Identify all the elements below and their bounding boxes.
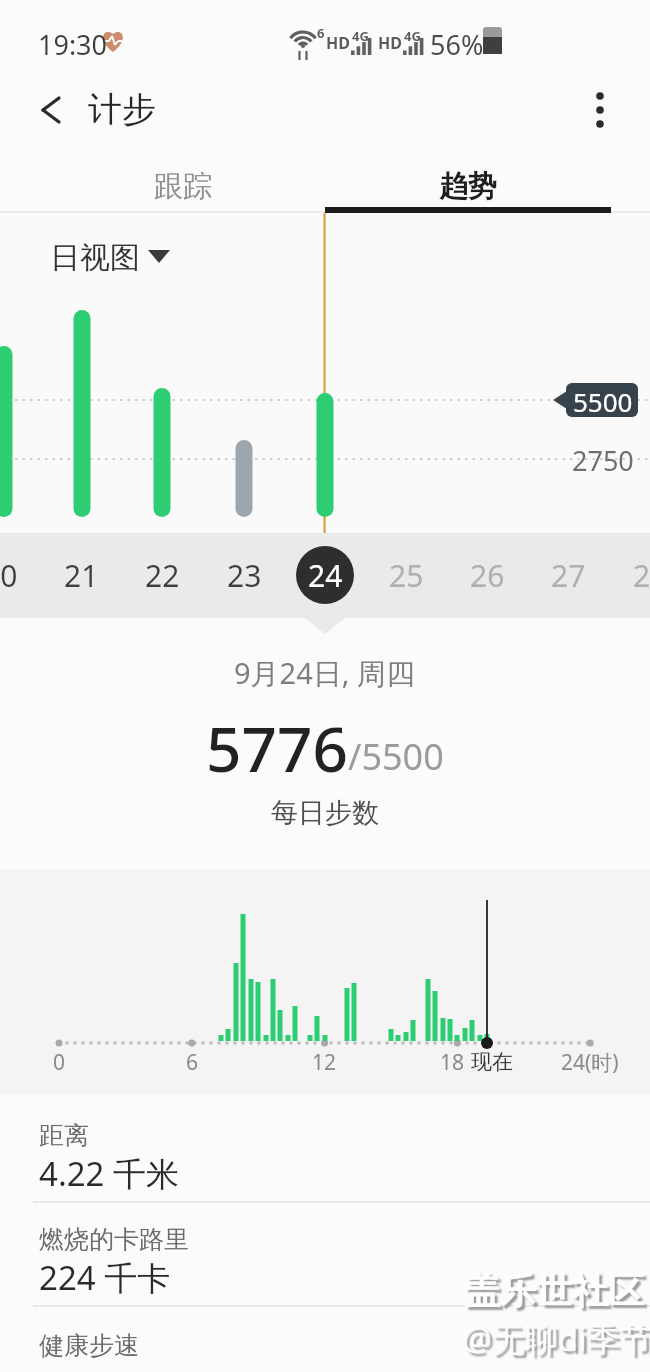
- staticText: 日视图: [50, 239, 140, 277]
- staticText: 0: [53, 1048, 66, 1077]
- staticText: 5776: [206, 706, 348, 786]
- staticText: 9月24日, 周四: [234, 653, 416, 693]
- button[interactable]: [578, 84, 622, 136]
- button[interactable]: 燃烧的卡路里: [0, 1212, 650, 1306]
- staticText: @无聊di季节: [462, 1316, 650, 1361]
- button[interactable]: 21: [41, 553, 121, 598]
- button[interactable]: 健康步速: [0, 1316, 650, 1372]
- staticText: 12: [312, 1048, 337, 1077]
- staticText: 2750: [572, 442, 634, 479]
- staticText: 4G: [404, 27, 421, 45]
- staticText: 盖乐世社区: [464, 1268, 644, 1313]
- staticText: 20: [0, 555, 18, 596]
- button[interactable]: 跟踪: [40, 160, 325, 212]
- staticText: 燃烧的卡路里: [39, 1224, 189, 1255]
- staticText: 健康步速: [39, 1330, 139, 1361]
- staticText: HD: [378, 32, 402, 54]
- button[interactable]: 26: [447, 553, 527, 598]
- staticText: 224 千卡: [39, 1255, 171, 1300]
- button[interactable]: 27: [528, 553, 608, 598]
- staticText: 24: [308, 555, 343, 596]
- button[interactable]: [26, 84, 78, 136]
- staticText: 25: [389, 555, 424, 596]
- button[interactable]: 23: [204, 553, 284, 598]
- staticText: 计步: [88, 88, 156, 131]
- staticText: 18: [440, 1048, 465, 1077]
- button[interactable]: 日视图: [40, 236, 180, 278]
- staticText: 26: [470, 555, 505, 596]
- staticText: 19:30: [38, 26, 108, 63]
- staticText: 6: [186, 1048, 199, 1077]
- staticText: 27: [551, 555, 586, 596]
- staticText: 56%: [430, 26, 484, 63]
- button[interactable]: 25: [366, 553, 446, 598]
- button[interactable]: 趋势: [325, 160, 610, 212]
- staticText: 23: [227, 555, 262, 596]
- staticText: 22: [145, 555, 180, 596]
- button[interactable]: 22: [122, 553, 202, 598]
- staticText: 4.22 千米: [39, 1151, 180, 1196]
- button[interactable]: 24: [285, 553, 365, 598]
- staticText: 跟踪: [154, 168, 212, 205]
- staticText: 距离: [39, 1120, 89, 1151]
- staticText: 21: [64, 555, 99, 596]
- staticText: 每日步数: [271, 796, 379, 830]
- staticText: 6: [317, 24, 325, 42]
- button[interactable]: 距离: [0, 1108, 650, 1202]
- staticText: 现在: [471, 1049, 513, 1075]
- staticText: 趋势: [439, 168, 497, 205]
- staticText: 28: [633, 555, 650, 596]
- staticText: 4G: [352, 27, 369, 45]
- staticText: HD: [326, 32, 350, 54]
- staticText: /5500: [348, 732, 444, 781]
- staticText: 24(时): [561, 1048, 619, 1077]
- staticText: 5500: [573, 384, 633, 419]
